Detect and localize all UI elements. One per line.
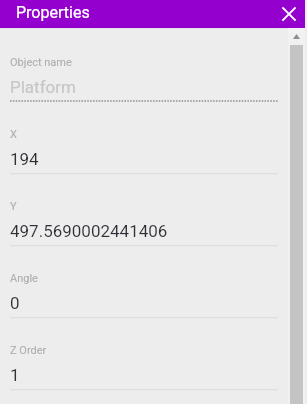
button[interactable] — [0, 267, 307, 323]
staticText: Properties — [16, 3, 90, 22]
button[interactable]: Close — [274, 0, 304, 28]
staticText: 194 — [10, 149, 39, 169]
staticText: 1 — [10, 365, 20, 385]
staticText: Platform — [10, 77, 76, 97]
button[interactable] — [0, 195, 307, 251]
staticText: Z Order — [10, 344, 47, 357]
staticText: 497.5690002441406 — [10, 221, 168, 241]
button[interactable] — [0, 51, 307, 107]
staticText: Angle — [10, 272, 38, 285]
staticText: X — [10, 128, 17, 141]
staticText: Object name — [10, 56, 72, 69]
staticText: Y — [10, 200, 17, 213]
button[interactable] — [0, 123, 307, 179]
button[interactable]: Scroll up — [288, 28, 307, 45]
staticText: 0 — [10, 293, 20, 313]
button[interactable] — [0, 339, 307, 395]
